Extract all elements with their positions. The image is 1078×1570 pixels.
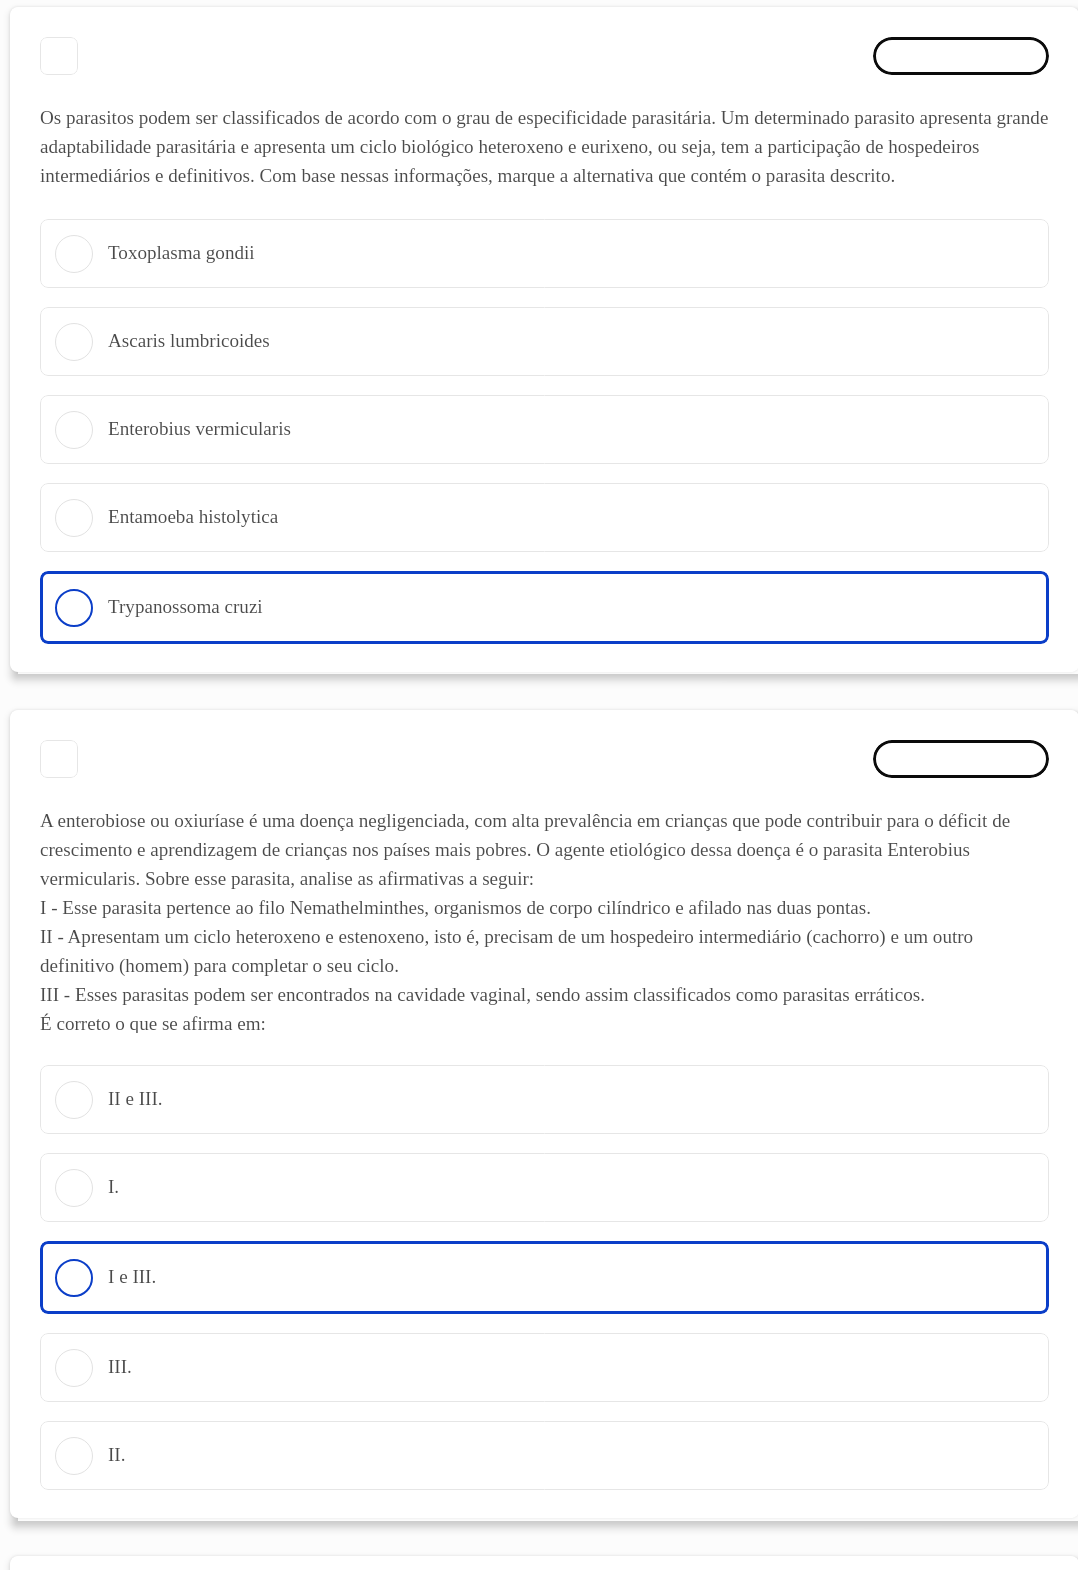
button[interactable]: Toxoplasma gondii: [40, 219, 1049, 288]
staticText: Ascaris lumbricoides: [108, 324, 270, 353]
staticText: A enterobiose ou oxiuríase é uma doença …: [40, 804, 1049, 1033]
staticText: Enterobius vermicularis: [108, 412, 291, 441]
button[interactable]: II.: [40, 1421, 1049, 1490]
staticText: I e III.: [108, 1260, 157, 1289]
staticText: Os parasitos podem ser classificados de …: [40, 101, 1049, 187]
button[interactable]: Responder: [873, 37, 1049, 75]
button[interactable]: Entamoeba histolytica: [40, 483, 1049, 552]
button[interactable]: Ascaris lumbricoides: [40, 307, 1049, 376]
button[interactable]: II e III.: [40, 1065, 1049, 1134]
button[interactable]: I e III.: [40, 1241, 1049, 1314]
staticText: Toxoplasma gondii: [108, 236, 255, 265]
button[interactable]: Trypanossoma cruzi: [40, 571, 1049, 644]
staticText: III.: [108, 1350, 132, 1379]
button[interactable]: I.: [40, 1153, 1049, 1222]
staticText: Trypanossoma cruzi: [108, 590, 263, 619]
staticText: II e III.: [108, 1082, 163, 1111]
button[interactable]: Enterobius vermicularis: [40, 395, 1049, 464]
button[interactable]: Responder: [873, 740, 1049, 778]
button[interactable]: Marcar questão: [40, 740, 78, 778]
staticText: Entamoeba histolytica: [108, 500, 279, 529]
button[interactable]: Marcar questão: [40, 37, 78, 75]
button[interactable]: III.: [40, 1333, 1049, 1402]
staticText: I.: [108, 1170, 120, 1199]
staticText: II.: [108, 1438, 126, 1467]
